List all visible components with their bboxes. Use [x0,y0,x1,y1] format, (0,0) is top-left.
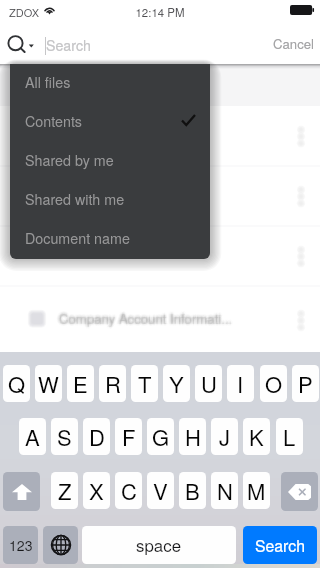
staticText: O [265,368,283,400]
staticText: ZDOX [9,4,40,20]
button[interactable]: Z [51,472,78,509]
button[interactable]: S [51,418,78,455]
button[interactable]: E [67,365,94,402]
staticText: Search [255,534,305,557]
button[interactable]: D [83,418,110,455]
button[interactable]: P [292,365,319,402]
button[interactable]: Cancel [268,21,320,65]
staticText: Company Account Informati... [59,309,233,328]
button[interactable]: Y [163,365,190,402]
staticText: Company Account Informati... [58,309,232,328]
button[interactable]: T [131,365,158,402]
button[interactable]: Q [3,365,30,402]
staticText: 12:14 PM [0,4,320,20]
staticText: Q [8,368,26,400]
staticText: Search [46,35,91,55]
staticText: R [105,368,121,400]
staticText: Company Account Informati... [58,310,232,329]
staticText: Company Account Informati... [61,307,235,326]
button[interactable]: Document name [10,220,210,259]
button[interactable]: A [19,418,46,455]
staticText: Company Account Informati... [57,309,231,328]
staticText: Company Account Informati... [56,309,230,328]
staticText: Company Account Informati... [59,307,233,326]
button[interactable]: W [35,365,62,402]
button[interactable]: L [276,418,303,455]
staticText: Company Account Informati... [56,310,230,329]
button[interactable]: Shared by me [10,142,210,181]
button[interactable]: Shift [3,472,40,511]
staticText: Company Account Informati... [59,307,233,326]
staticText: F [122,421,136,453]
staticText: Company Account Informati... [59,309,233,328]
staticText: G [152,421,170,453]
staticText: Company Account Informati... [59,309,233,328]
button[interactable]: Contents [10,103,210,142]
staticText: N [217,475,233,507]
staticText: Company Account Informati... [59,306,233,325]
button[interactable]: K [243,418,270,455]
staticText: Company Account Informati... [57,306,231,325]
button[interactable]: V [147,472,174,509]
staticText: Document name [25,228,130,248]
staticText: Y [169,368,184,400]
staticText: Company Account Informati... [59,308,233,327]
staticText: Company Account Informati... [60,310,234,329]
staticText: B [185,475,200,507]
staticText: Company Account Informati... [60,309,234,328]
button[interactable]: O [260,365,287,402]
button[interactable]: Backspace [281,472,318,511]
staticText: All files [25,72,71,92]
button[interactable]: Search [243,526,317,564]
staticText: Company Account Informati... [58,311,232,330]
staticText: Company Account Informati... [57,311,231,330]
button[interactable]: N [211,472,238,509]
button[interactable]: X [83,472,110,509]
button[interactable]: All files [10,64,210,103]
button[interactable]: I [227,365,254,402]
button[interactable]: Next keyboard [43,526,78,564]
staticText: Company Account Informati... [60,307,234,326]
staticText: Company Account Informati... [57,308,231,327]
staticText: J [219,421,231,453]
staticText: Company Account Informati... [56,306,230,325]
staticText: Company Account Informati... [57,307,231,326]
staticText: Company Account Informati... [59,311,233,330]
staticText: Company Account Informati... [57,310,231,329]
button[interactable]: U [195,365,222,402]
staticText: Company Account Informati... [59,308,233,327]
staticText: T [138,368,152,400]
staticText: D [89,421,105,453]
staticText: X [89,475,104,507]
button[interactable]: H [179,418,206,455]
staticText: W [38,368,59,400]
staticText: K [249,421,264,453]
staticText: Company Account Informati... [60,309,234,328]
staticText: Shared by me [25,150,114,170]
button[interactable]: 123 [3,526,38,564]
staticText: Shared with me [25,189,125,209]
button[interactable]: Search scope [0,20,46,64]
button[interactable]: M [243,472,270,509]
button[interactable]: J [211,418,238,455]
staticText: Contents [25,111,83,131]
staticText: Company Account Informati... [59,310,233,329]
staticText: C [121,475,137,507]
staticText: Company Account Informati... [61,311,235,330]
staticText: 123 [9,535,33,555]
staticText: Company Account Informati... [60,311,234,330]
staticText: Company Account Informati... [56,309,230,328]
staticText: Company Account Informati... [56,311,230,330]
button[interactable]: B [179,472,206,509]
staticText: Company Account Informati... [61,308,235,327]
button[interactable]: G [147,418,174,455]
button[interactable]: R [99,365,126,402]
staticText: Company Account Informati... [60,306,234,325]
button[interactable]: Shared with me [10,181,210,220]
staticText: Company Account Informati... [58,308,232,327]
button[interactable]: space [82,526,236,564]
staticText: Company Account Informati... [59,311,233,330]
button[interactable]: C [115,472,142,509]
button[interactable]: F [115,418,142,455]
staticText: Cancel [273,34,315,53]
